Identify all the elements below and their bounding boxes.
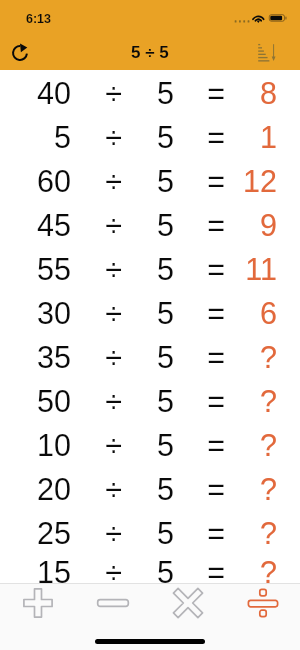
staticText: 60 [0, 164, 71, 198]
staticText: 20 [0, 472, 71, 506]
staticText: 12 [225, 164, 277, 198]
staticText: ÷ [71, 516, 122, 550]
staticText: ÷ [71, 76, 122, 110]
staticText: 45 [0, 208, 71, 242]
staticText: 5 [122, 120, 174, 154]
staticText: 5 [122, 428, 174, 462]
staticText: 10 [0, 428, 71, 462]
staticText: ÷ [71, 555, 122, 584]
button[interactable]: 20 [0, 466, 300, 510]
button[interactable]: 60 [0, 158, 300, 202]
staticText: = [174, 120, 225, 154]
button[interactable]: Reload [3, 32, 37, 66]
staticText: = [174, 340, 225, 374]
staticText: 35 [0, 340, 71, 374]
staticText: ÷ [71, 120, 122, 154]
button[interactable]: Multiplication [150, 584, 225, 622]
button[interactable]: 55 [0, 246, 300, 290]
staticText: ÷ [71, 164, 122, 198]
staticText: 11 [225, 252, 277, 286]
button[interactable]: 30 [0, 290, 300, 334]
staticText: = [174, 208, 225, 242]
button[interactable]: Subtraction [75, 584, 150, 622]
staticText: ? [225, 555, 277, 584]
button[interactable]: 40 [0, 70, 300, 114]
staticText: 5 [0, 120, 71, 154]
staticText: 5 [122, 516, 174, 550]
staticText: ÷ [71, 384, 122, 418]
staticText: = [174, 516, 225, 550]
staticText: ÷ [71, 340, 122, 374]
staticText: 9 [225, 208, 277, 242]
staticText: 5 [122, 76, 174, 110]
staticText: 55 [0, 252, 71, 286]
staticText: 25 [0, 516, 71, 550]
staticText: 5 [122, 340, 174, 374]
staticText: ÷ [71, 472, 122, 506]
staticText: ÷ [71, 208, 122, 242]
button[interactable]: 45 [0, 202, 300, 246]
staticText: 5 [122, 384, 174, 418]
button[interactable]: 15 [0, 554, 300, 583]
staticText: = [174, 252, 225, 286]
staticText: = [174, 164, 225, 198]
staticText: 40 [0, 76, 71, 110]
staticText: ? [225, 516, 277, 550]
staticText: ? [225, 384, 277, 418]
staticText: 8 [225, 76, 277, 110]
staticText: 5 [122, 164, 174, 198]
button[interactable]: Addition [0, 584, 75, 622]
staticText: 1 [225, 120, 277, 154]
button[interactable]: 10 [0, 422, 300, 466]
button[interactable]: Sort [250, 32, 284, 66]
button[interactable]: 5 [0, 114, 300, 158]
staticText: ? [225, 472, 277, 506]
staticText: = [174, 296, 225, 330]
staticText: 5 [122, 208, 174, 242]
staticText: 6 [225, 296, 277, 330]
staticText: 15 [0, 555, 71, 584]
staticText: 50 [0, 384, 71, 418]
staticText: ? [225, 340, 277, 374]
button[interactable]: 50 [0, 378, 300, 422]
staticText: ÷ [71, 252, 122, 286]
staticText: = [174, 76, 225, 110]
staticText: ÷ [71, 428, 122, 462]
staticText: 5 [122, 555, 174, 584]
staticText: ÷ [71, 296, 122, 330]
staticText: 5 ÷ 5 [131, 43, 169, 62]
button[interactable]: Division [225, 584, 300, 622]
staticText: = [174, 384, 225, 418]
staticText: 5 [122, 472, 174, 506]
staticText: = [174, 428, 225, 462]
button[interactable]: 25 [0, 510, 300, 554]
staticText: 30 [0, 296, 71, 330]
staticText: 6:13 [26, 12, 52, 26]
staticText: = [174, 472, 225, 506]
staticText: 5 [122, 296, 174, 330]
button[interactable]: 35 [0, 334, 300, 378]
staticText: 5 [122, 252, 174, 286]
staticText: ? [225, 428, 277, 462]
staticText: = [174, 555, 225, 584]
